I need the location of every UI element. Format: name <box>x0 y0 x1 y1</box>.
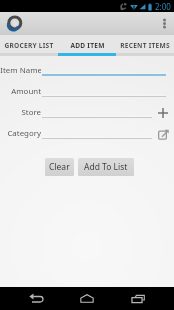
staticText: Category <box>0 128 41 139</box>
button[interactable]: Recent apps <box>123 287 153 310</box>
staticText: Clear <box>49 161 70 173</box>
staticText: Amount <box>0 86 41 97</box>
button[interactable]: GROCERY LIST <box>0 35 58 53</box>
button[interactable] <box>42 103 152 118</box>
button[interactable]: Add store <box>156 106 170 120</box>
staticText: Add To List <box>84 161 128 173</box>
button[interactable] <box>42 61 166 76</box>
button[interactable]: App icon <box>7 16 22 31</box>
button[interactable]: RECENT ITEMS <box>116 35 174 53</box>
staticText: Item Name <box>0 65 41 76</box>
button[interactable]: Edit categories <box>156 127 170 141</box>
button[interactable]: Add To List <box>78 158 134 176</box>
button[interactable]: More options <box>154 12 174 35</box>
button[interactable] <box>42 124 152 139</box>
staticText: Store <box>0 107 41 118</box>
button[interactable]: Clear <box>45 158 74 176</box>
button[interactable]: Home <box>72 287 102 310</box>
staticText: GROCERY LIST <box>4 41 54 50</box>
button[interactable]: Back <box>21 287 51 310</box>
button[interactable]: ADD ITEM <box>58 35 116 53</box>
staticText: ADD ITEM <box>70 41 105 50</box>
staticText: 2:00 <box>155 1 171 12</box>
staticText: RECENT ITEMS <box>120 41 170 50</box>
button[interactable] <box>42 82 166 97</box>
